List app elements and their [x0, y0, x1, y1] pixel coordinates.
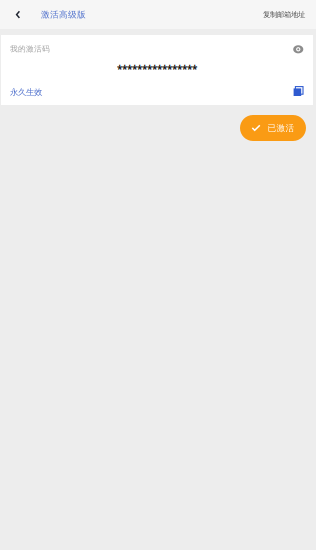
button[interactable]: 永久生效 [10, 87, 42, 98]
staticText: 永久生效 [10, 87, 42, 98]
staticText: 激活高级版 [41, 9, 86, 20]
button[interactable]: 已激活 [240, 115, 306, 141]
staticText: 我的激活码 [10, 44, 50, 54]
button[interactable]: 返回 [7, 0, 29, 29]
button[interactable]: 复制激活码 [293, 86, 304, 97]
button[interactable]: 激活高级版 [41, 0, 86, 29]
button[interactable]: 复制邮箱地址 [263, 0, 305, 29]
staticText: **************** [117, 62, 197, 76]
button[interactable]: 显示激活码 [293, 45, 304, 54]
staticText: 已激活 [267, 122, 294, 133]
staticText: 复制邮箱地址 [263, 10, 305, 19]
